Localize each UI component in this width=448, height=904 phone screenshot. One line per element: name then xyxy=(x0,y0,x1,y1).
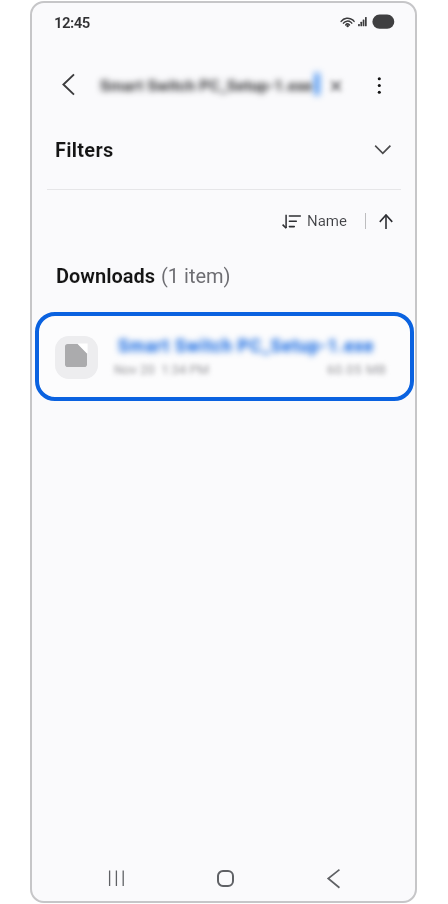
staticText: Filters xyxy=(55,138,114,161)
button[interactable]: Back xyxy=(311,857,359,901)
button[interactable]: Smart Switch PC_Setup-1.exe xyxy=(35,312,414,401)
staticText: 12:45 xyxy=(54,14,90,32)
button[interactable]: Sort ascending xyxy=(368,203,408,241)
staticText: Nov 20 1:34 PM xyxy=(114,362,210,377)
staticText: 60.05 MB xyxy=(327,362,387,377)
button[interactable]: Home xyxy=(202,857,250,901)
staticText: Smart Switch PC_Setup-1.exe xyxy=(100,77,313,95)
staticText: Name xyxy=(307,212,347,230)
button[interactable]: Navigate up xyxy=(55,65,101,106)
button[interactable]: Name xyxy=(278,203,348,241)
staticText: (1 item) xyxy=(161,264,231,287)
staticText: Smart Switch PC_Setup-1.exe xyxy=(118,336,375,357)
button[interactable]: Smart Switch PC_Setup-1.exe xyxy=(94,61,334,109)
button[interactable]: Recent apps xyxy=(95,857,143,901)
staticText: Downloads xyxy=(56,264,156,287)
button[interactable]: Clear search xyxy=(321,71,349,100)
button[interactable]: More options xyxy=(360,65,398,106)
button[interactable]: Filters xyxy=(30,126,417,173)
